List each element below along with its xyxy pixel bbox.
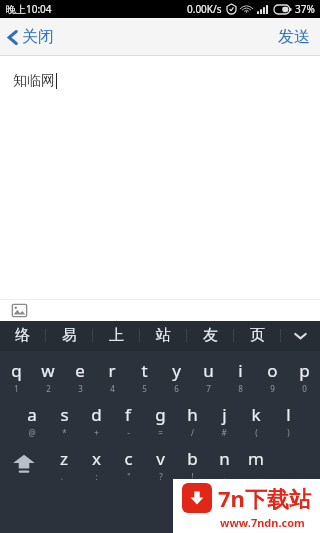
button[interactable]: x: [80, 442, 112, 486]
staticText: j: [222, 403, 227, 426]
staticText: l: [286, 403, 291, 426]
button[interactable]: z: [48, 442, 80, 486]
staticText: :: [95, 471, 98, 482]
staticText: e: [75, 359, 85, 382]
staticText: 8: [238, 383, 243, 394]
button[interactable]: 站: [140, 321, 186, 350]
staticText: 上: [109, 326, 124, 345]
staticText: 友: [203, 326, 218, 345]
staticText: .: [255, 471, 258, 482]
staticText: i: [238, 359, 243, 382]
button[interactable]: w: [32, 354, 64, 398]
staticText: 37%: [295, 2, 315, 16]
staticText: v: [156, 447, 165, 470]
staticText: ,: [223, 471, 226, 482]
staticText: n: [219, 447, 230, 470]
button[interactable]: v: [144, 442, 176, 486]
button[interactable]: i: [224, 354, 256, 398]
staticText: 站: [156, 326, 171, 345]
button[interactable]: p: [288, 354, 320, 398]
staticText: /: [191, 427, 194, 438]
staticText: d: [91, 403, 102, 426]
button[interactable]: n: [208, 442, 240, 486]
button[interactable]: 易: [46, 321, 92, 350]
button[interactable]: r: [96, 354, 128, 398]
staticText: h: [187, 403, 198, 426]
staticText: (: [255, 427, 258, 438]
staticText: x: [92, 447, 101, 470]
staticText: +: [94, 427, 99, 438]
button[interactable]: 知临网: [0, 56, 320, 299]
button[interactable]: f: [112, 398, 144, 442]
staticText: 2: [46, 383, 51, 394]
staticText: 7: [206, 383, 211, 394]
staticText: 页: [250, 326, 265, 345]
button[interactable]: o: [256, 354, 288, 398]
staticText: @: [28, 427, 36, 438]
button[interactable]: 络: [0, 321, 45, 350]
staticText: 发送: [278, 27, 310, 47]
staticText: a: [27, 403, 37, 426]
staticText: g: [155, 403, 166, 426]
staticText: !: [191, 471, 194, 482]
staticText: b: [187, 447, 198, 470]
staticText: o: [267, 359, 278, 382]
button[interactable]: 上: [93, 321, 139, 350]
staticText: 1: [14, 383, 19, 394]
button[interactable]: k: [240, 398, 272, 442]
staticText: -: [127, 427, 130, 438]
button[interactable]: q: [0, 354, 32, 398]
button[interactable]: m: [240, 442, 272, 486]
button[interactable]: Backspace: [272, 442, 320, 486]
button[interactable]: t: [128, 354, 160, 398]
button[interactable]: a: [16, 398, 48, 442]
staticText: k: [251, 403, 261, 426]
staticText: c: [124, 447, 133, 470]
button[interactable]: Shift: [0, 442, 48, 486]
button[interactable]: j: [208, 398, 240, 442]
staticText: www.7ndn.com: [220, 515, 305, 530]
button[interactable]: e: [64, 354, 96, 398]
staticText: q: [11, 359, 22, 382]
button[interactable]: c: [112, 442, 144, 486]
button[interactable]: l: [272, 398, 304, 442]
staticText: w: [41, 359, 55, 382]
button[interactable]: 友: [187, 321, 233, 350]
staticText: *: [62, 427, 67, 438]
staticText: 6: [174, 383, 179, 394]
staticText: y: [172, 359, 181, 382]
staticText: 晚上10:04: [6, 2, 52, 16]
staticText: ": [127, 471, 131, 482]
staticText: ?: [159, 471, 163, 482]
button[interactable]: u: [192, 354, 224, 398]
button[interactable]: 发送: [268, 21, 320, 53]
staticText: 0.00K/s: [187, 2, 222, 16]
staticText: p: [299, 359, 310, 382]
button[interactable]: 关闭: [0, 21, 66, 53]
button[interactable]: Expand candidates: [281, 321, 320, 350]
button[interactable]: Insert image: [11, 302, 28, 319]
staticText: =: [158, 427, 163, 438]
staticText: 络: [15, 326, 30, 345]
staticText: 3: [78, 383, 83, 394]
staticText: 易: [62, 326, 77, 345]
staticText: #: [221, 427, 227, 438]
staticText: 关闭: [22, 27, 54, 47]
staticText: 7n下载站: [218, 483, 311, 513]
button[interactable]: s: [48, 398, 80, 442]
button[interactable]: 页: [234, 321, 280, 350]
button[interactable]: d: [80, 398, 112, 442]
staticText: 、: [60, 471, 68, 481]
button[interactable]: g: [144, 398, 176, 442]
button[interactable]: y: [160, 354, 192, 398]
staticText: 知临网: [13, 72, 55, 90]
staticText: 9: [270, 383, 275, 394]
staticText: 5: [142, 383, 147, 394]
button[interactable]: h: [176, 398, 208, 442]
staticText: t: [141, 359, 148, 382]
staticText: m: [248, 447, 264, 470]
button[interactable]: b: [176, 442, 208, 486]
staticText: s: [60, 403, 69, 426]
staticText: u: [203, 359, 214, 382]
staticText: f: [125, 403, 131, 426]
